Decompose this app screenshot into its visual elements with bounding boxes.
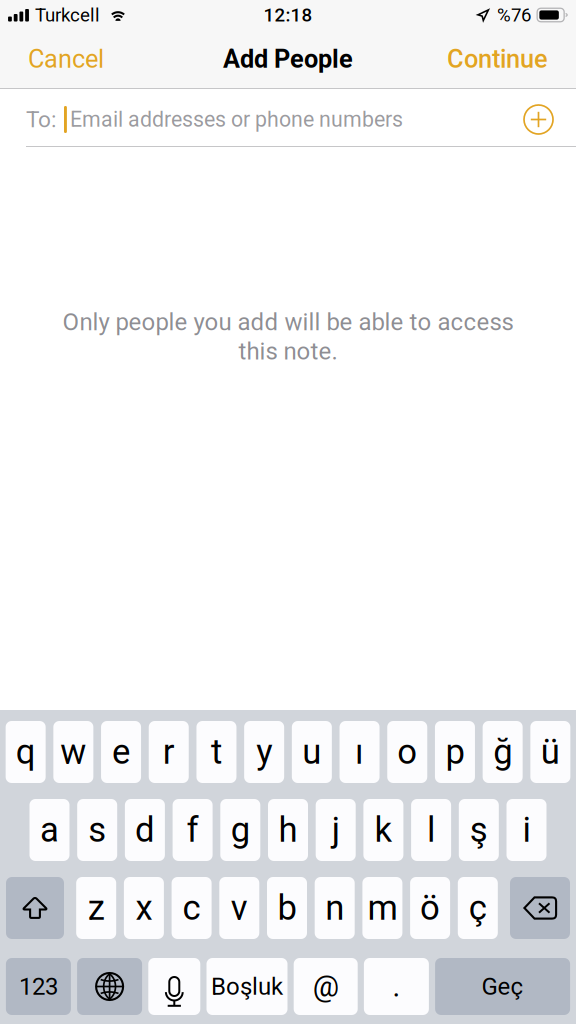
staticText: . (392, 969, 400, 1004)
staticText: ü (541, 732, 560, 772)
staticText: l (427, 810, 435, 850)
button[interactable]: @ (294, 958, 358, 1015)
button[interactable]: r (149, 721, 189, 783)
staticText: f (187, 810, 199, 850)
staticText: s (88, 810, 106, 850)
button[interactable]: o (387, 721, 427, 783)
button[interactable]: Add contact (518, 99, 559, 140)
button[interactable]: i (506, 799, 546, 861)
button[interactable]: g (220, 799, 260, 861)
button[interactable]: Continue (437, 34, 558, 84)
staticText: t (211, 732, 222, 772)
staticText: w (60, 732, 86, 772)
staticText: Only people you add will be able to acce… (62, 308, 513, 336)
button[interactable]: w (53, 721, 93, 783)
button[interactable]: u (292, 721, 332, 783)
button[interactable]: h (268, 799, 308, 861)
button[interactable]: Shift (6, 877, 64, 939)
button[interactable]: . (364, 958, 429, 1015)
staticText: Turkcell (35, 4, 100, 26)
button[interactable]: Delete (510, 877, 570, 939)
staticText: @ (313, 969, 339, 1004)
staticText: b (277, 888, 296, 928)
button[interactable]: t (196, 721, 236, 783)
button[interactable]: m (362, 877, 402, 939)
button[interactable]: 123 (6, 958, 71, 1015)
button[interactable]: a (29, 799, 69, 861)
staticText: this note. (238, 337, 337, 365)
staticText: ş (470, 810, 488, 850)
button[interactable]: e (101, 721, 141, 783)
staticText: Cancel (28, 44, 104, 74)
staticText: Geç (482, 972, 524, 1000)
button[interactable]: y (244, 721, 284, 783)
staticText: j (332, 810, 340, 850)
staticText: ı (355, 732, 364, 772)
staticText: y (256, 732, 272, 772)
staticText: i (522, 810, 530, 850)
staticText: a (40, 810, 59, 850)
staticText: h (278, 810, 297, 850)
button[interactable]: d (125, 799, 165, 861)
staticText: u (302, 732, 321, 772)
button[interactable]: x (124, 877, 164, 939)
staticText: z (88, 888, 105, 928)
button[interactable]: p (435, 721, 475, 783)
button[interactable]: z (76, 877, 116, 939)
button[interactable]: f (173, 799, 213, 861)
staticText: ç (469, 888, 487, 928)
button[interactable]: ç (458, 877, 498, 939)
staticText: Email addresses or phone numbers (70, 107, 403, 132)
button[interactable]: b (267, 877, 307, 939)
button[interactable]: j (316, 799, 356, 861)
staticText: o (397, 732, 417, 772)
staticText: Continue (447, 44, 548, 74)
staticText: x (135, 888, 152, 928)
button[interactable]: k (363, 799, 403, 861)
button[interactable]: Boşluk (206, 958, 287, 1015)
staticText: g (231, 810, 250, 850)
staticText: %76 (497, 4, 531, 26)
staticText: 123 (19, 972, 58, 1000)
staticText: d (135, 810, 155, 850)
button[interactable]: ö (410, 877, 450, 939)
staticText: k (374, 810, 392, 850)
staticText: Add People (223, 44, 353, 74)
staticText: r (163, 732, 175, 772)
staticText: c (183, 888, 201, 928)
button[interactable]: v (219, 877, 259, 939)
staticText: To: (26, 106, 56, 133)
staticText: e (112, 732, 130, 772)
staticText: ğ (493, 732, 512, 772)
button[interactable]: Dictation (148, 958, 200, 1015)
staticText: q (16, 732, 36, 772)
button[interactable]: l (411, 799, 451, 861)
button[interactable]: Geç (435, 958, 570, 1015)
staticText: v (231, 888, 248, 928)
staticText: 12:18 (263, 4, 312, 26)
button[interactable]: ü (530, 721, 570, 783)
button[interactable]: ğ (483, 721, 523, 783)
button[interactable]: c (172, 877, 212, 939)
staticText: Boşluk (211, 972, 283, 1000)
staticText: ö (420, 888, 440, 928)
button[interactable]: s (77, 799, 117, 861)
button[interactable]: Next keyboard (77, 958, 142, 1015)
staticText: n (325, 888, 344, 928)
staticText: p (445, 732, 464, 772)
button[interactable]: Cancel (18, 34, 114, 84)
button[interactable]: ş (459, 799, 499, 861)
button[interactable]: n (315, 877, 355, 939)
button[interactable]: ı (339, 721, 379, 783)
staticText: m (367, 888, 397, 928)
button[interactable]: q (6, 721, 46, 783)
